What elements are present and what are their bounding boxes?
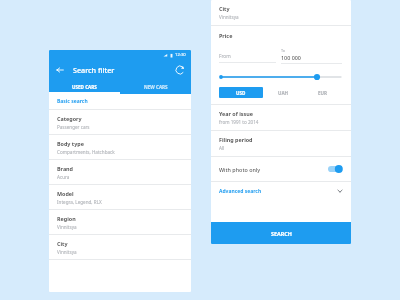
staticText: Basic search — [57, 98, 88, 105]
button[interactable]: Region — [49, 210, 191, 234]
button[interactable]: Filing period — [211, 131, 351, 156]
staticText: To — [281, 48, 286, 53]
staticText: City — [57, 240, 68, 247]
staticText: Price — [219, 32, 233, 39]
button[interactable]: With photo only — [211, 157, 351, 181]
staticText: from 1991 to 2014 — [219, 119, 259, 125]
staticText: Advanced search — [219, 188, 262, 195]
button[interactable]: Advanced search — [211, 182, 351, 200]
staticText: City — [219, 5, 230, 12]
staticText: 12:30 — [175, 52, 186, 58]
staticText: Body type — [57, 140, 84, 147]
button[interactable]: Model — [49, 185, 191, 209]
staticText: Vinnitsya — [57, 224, 77, 230]
button[interactable]: NEW CARS — [120, 80, 191, 94]
staticText: Vinnitsya — [57, 249, 77, 255]
staticText: Compartments, Hatchback — [57, 149, 115, 155]
button[interactable]: Body type — [49, 135, 191, 159]
button[interactable]: To — [281, 48, 343, 64]
staticText: Passenger cars — [57, 124, 90, 130]
staticText: USD — [236, 90, 246, 96]
button[interactable]: Basic search — [49, 94, 191, 109]
button[interactable]: USED CARS — [49, 80, 120, 94]
staticText: Vinnitsya — [219, 14, 239, 20]
button[interactable]: Back — [54, 64, 66, 76]
staticText: UAH — [278, 90, 289, 96]
button[interactable]: City — [211, 0, 351, 25]
button[interactable]: City — [49, 235, 191, 259]
button[interactable]: Brand — [49, 160, 191, 184]
staticText: EUR — [318, 90, 328, 96]
staticText: Filing period — [219, 136, 253, 143]
button[interactable]: SEARCH — [211, 222, 351, 244]
staticText: SEARCH — [271, 230, 292, 237]
staticText: Year of issue — [219, 110, 253, 117]
button[interactable]: Refresh — [174, 64, 186, 76]
button[interactable]: From — [219, 48, 281, 63]
button[interactable]: Year of issue — [211, 105, 351, 130]
staticText: Integra, Legend, RLX — [57, 199, 102, 205]
button[interactable]: UAH — [263, 87, 303, 98]
staticText: Region — [57, 215, 76, 222]
staticText: All — [219, 145, 225, 151]
staticText: NEW CARS — [144, 84, 168, 90]
staticText: 100 000 — [281, 54, 301, 61]
staticText: Acura — [57, 174, 70, 180]
staticText: Model — [57, 190, 74, 197]
button[interactable]: EUR — [303, 87, 343, 98]
staticText: USED CARS — [72, 84, 97, 90]
staticText: Category — [57, 115, 82, 122]
button[interactable]: USD — [219, 87, 263, 98]
button[interactable]: Category — [49, 110, 191, 134]
staticText: With photo only — [219, 166, 261, 173]
staticText: Search filter — [73, 65, 115, 75]
staticText: Brand — [57, 165, 74, 172]
staticText: From — [219, 53, 231, 60]
